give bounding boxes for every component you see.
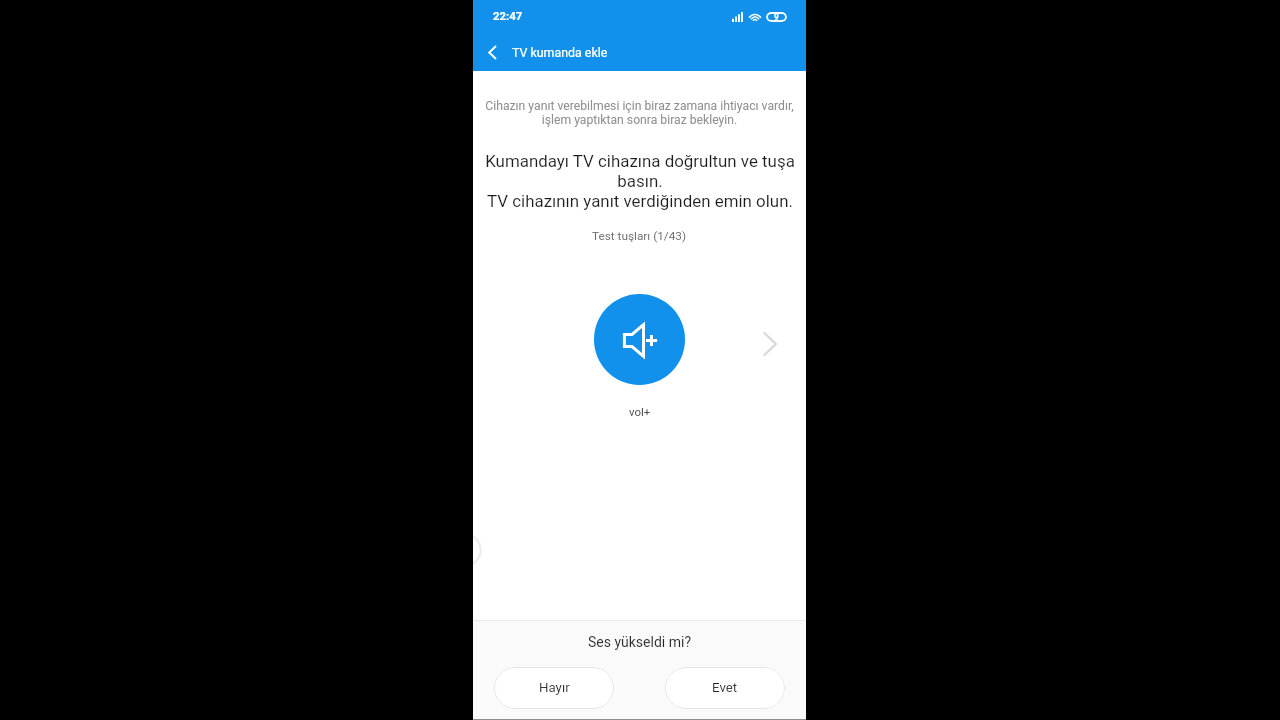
- button[interactable]: Volume up: [594, 294, 685, 385]
- staticText: 9: [774, 12, 779, 22]
- button[interactable]: Hayır: [494, 667, 614, 709]
- staticText: Evet: [712, 680, 738, 696]
- staticText: 22:47: [493, 10, 523, 23]
- staticText: vol+: [629, 405, 651, 418]
- staticText: Test tuşları (1/43): [592, 229, 687, 243]
- button[interactable]: Next: [753, 327, 787, 361]
- staticText: TV kumanda ekle: [512, 45, 608, 60]
- button[interactable]: Evet: [665, 667, 785, 709]
- button[interactable]: Back: [473, 33, 511, 71]
- staticText: Hayır: [539, 680, 570, 696]
- staticText: Cihazın yanıt verebilmesi için biraz zam…: [477, 99, 802, 127]
- staticText: Ses yükseldi mi?: [588, 634, 691, 650]
- staticText: Kumandayı TV cihazına doğrultun ve tuşa …: [477, 151, 803, 211]
